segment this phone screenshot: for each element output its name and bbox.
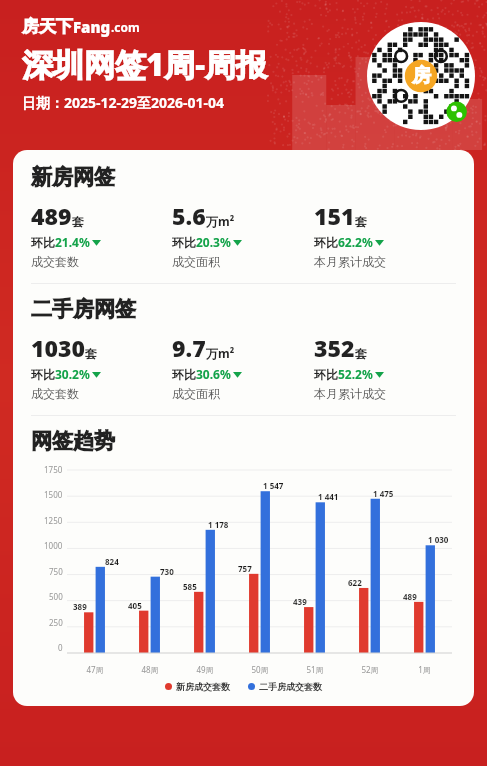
staticText: 757 <box>238 563 252 574</box>
staticText: 万m² <box>206 345 235 361</box>
staticText: 585 <box>183 581 197 592</box>
staticText: 本月累计成交 <box>314 254 386 269</box>
staticText: 21.4% <box>55 234 90 250</box>
staticText: 52周 <box>361 664 379 675</box>
staticText: 352 <box>314 332 355 363</box>
staticText: 深圳网签1周-周报 <box>22 43 268 85</box>
staticText: 30.2% <box>55 366 90 382</box>
staticText: 环比 <box>172 235 196 250</box>
staticText: 48周 <box>141 664 159 675</box>
staticText: 1000 <box>44 540 63 551</box>
staticText: 日期：2025-12-29至2026-01-04 <box>22 93 225 112</box>
staticText: 套 <box>72 214 84 229</box>
staticText: 1030 <box>31 332 85 363</box>
button[interactable]: 1030 <box>31 332 172 401</box>
button[interactable]: 352 <box>314 332 456 401</box>
staticText: 环比 <box>314 367 338 382</box>
staticText: 0 <box>58 642 63 653</box>
button[interactable]: QR code <box>367 22 475 130</box>
staticText: 5.6 <box>172 200 206 231</box>
staticText: 730 <box>160 566 174 577</box>
staticText: 房天下 <box>22 16 73 37</box>
button[interactable]: 489 <box>31 200 172 269</box>
staticText: 50周 <box>251 664 269 675</box>
button[interactable]: 新房成交套数 <box>165 681 230 692</box>
staticText: 1 547 <box>263 480 284 491</box>
staticText: 30.6% <box>196 366 231 382</box>
staticText: 1250 <box>44 515 63 526</box>
staticText: 成交面积 <box>172 386 220 401</box>
button[interactable]: 5.6 <box>172 200 314 269</box>
staticText: 405 <box>128 600 142 611</box>
button[interactable]: 新房网签 <box>31 164 115 190</box>
staticText: 47周 <box>86 664 104 675</box>
staticText: 9.7 <box>172 332 206 363</box>
staticText: 环比 <box>31 367 55 382</box>
staticText: 1 030 <box>428 534 449 545</box>
button[interactable]: 151 <box>314 200 456 269</box>
staticText: 20.3% <box>196 234 231 250</box>
staticText: 500 <box>49 591 63 602</box>
staticText: 房 <box>412 64 431 88</box>
staticText: 49周 <box>196 664 214 675</box>
staticText: 1750 <box>44 464 63 475</box>
staticText: 750 <box>49 566 63 577</box>
staticText: 52.2% <box>338 366 373 382</box>
staticText: 新房成交套数 <box>176 681 230 692</box>
staticText: 成交套数 <box>31 386 79 401</box>
staticText: 套 <box>355 214 367 229</box>
staticText: 环比 <box>31 235 55 250</box>
staticText: 成交面积 <box>172 254 220 269</box>
staticText: 250 <box>49 617 63 628</box>
staticText: .com <box>111 19 140 35</box>
staticText: 51周 <box>306 664 324 675</box>
staticText: 1500 <box>44 489 63 500</box>
staticText: 二手房成交套数 <box>259 681 322 692</box>
button[interactable]: 9.7 <box>172 332 314 401</box>
staticText: 151 <box>314 200 355 231</box>
staticText: 套 <box>355 346 367 361</box>
staticText: 824 <box>105 556 119 567</box>
staticText: 环比 <box>172 367 196 382</box>
staticText: 439 <box>293 596 307 607</box>
staticText: 389 <box>73 601 87 612</box>
staticText: 1 475 <box>373 488 394 499</box>
staticText: 套 <box>85 346 97 361</box>
staticText: 62.2% <box>338 234 373 250</box>
staticText: 万m² <box>206 213 235 229</box>
staticText: 1 178 <box>208 519 229 530</box>
staticText: 1周 <box>418 664 431 675</box>
staticText: 环比 <box>314 235 338 250</box>
staticText: 489 <box>31 200 72 231</box>
staticText: 622 <box>348 577 362 588</box>
staticText: 1 441 <box>318 491 339 502</box>
staticText: 489 <box>403 591 417 602</box>
button[interactable]: 二手房成交套数 <box>248 681 322 692</box>
button[interactable]: 二手房网签 <box>31 296 136 322</box>
button[interactable]: 网签趋势 <box>31 428 115 454</box>
staticText: 本月累计成交 <box>314 386 386 401</box>
staticText: Fang <box>73 17 111 37</box>
staticText: 成交套数 <box>31 254 79 269</box>
